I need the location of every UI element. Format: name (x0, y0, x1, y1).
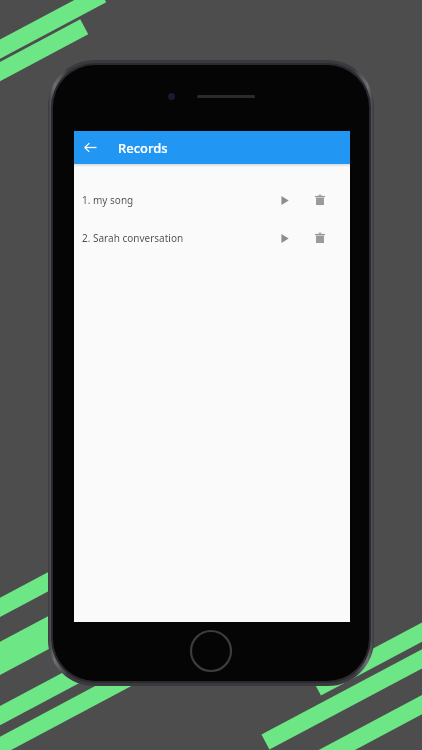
button[interactable]: Delete (308, 226, 332, 250)
staticText: 2. Sarah conversation (82, 231, 184, 245)
staticText: 1. my song (82, 193, 134, 207)
button[interactable]: 2. Sarah conversation (74, 226, 350, 250)
button[interactable]: 1. my song (74, 188, 350, 212)
button[interactable]: Home (189, 629, 233, 673)
button[interactable]: Play (272, 188, 296, 212)
staticText: Records (118, 139, 168, 157)
button[interactable]: Play (272, 226, 296, 250)
button[interactable]: Delete (308, 188, 332, 212)
button[interactable]: Back (74, 131, 107, 164)
